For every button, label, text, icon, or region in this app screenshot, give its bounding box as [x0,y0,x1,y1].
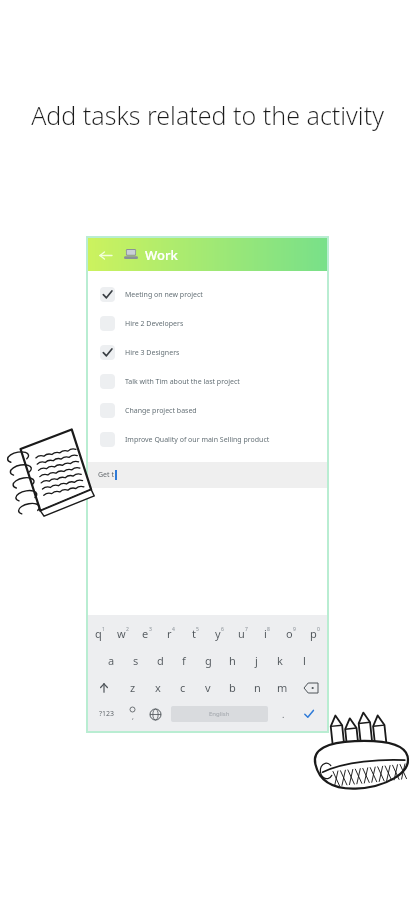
button[interactable]: p [303,620,327,647]
staticText: i [264,626,267,641]
staticText: 7 [245,626,248,633]
button[interactable]: v [195,674,220,701]
staticText: Talk with Tim about the last project [125,377,240,387]
staticText: Change project based [125,406,197,416]
button[interactable]: Shift [88,674,120,701]
staticText: k [277,653,283,668]
staticText: n [254,680,261,695]
staticText: t [192,626,196,641]
staticText: p [310,626,317,641]
staticText: 9 [293,626,296,633]
staticText: 8 [267,626,270,633]
staticText: g [205,653,212,668]
button[interactable]: Back [96,246,114,264]
button[interactable]: e [135,620,159,647]
button[interactable]: w [111,620,135,647]
button[interactable]: Enter [295,701,323,727]
button[interactable]: o [279,620,303,647]
staticText: u [238,626,245,641]
button[interactable]: d [148,647,172,674]
button[interactable]: t [183,620,207,647]
staticText: m [277,680,288,695]
staticText: o [286,626,293,641]
button[interactable]: Hire 2 Developers [88,309,327,338]
button[interactable]: s [124,647,148,674]
staticText: q [95,626,102,641]
button[interactable]: l [292,647,316,674]
button[interactable]: Improve Quality of our main Selling prod… [88,425,327,454]
button[interactable]: h [220,647,244,674]
staticText: z [130,680,136,695]
button[interactable]: Emoji and comma [121,701,144,727]
staticText: Get t [98,470,114,480]
staticText: x [155,680,161,695]
button[interactable]: y [207,620,231,647]
staticText: Meeting on new project [125,290,203,300]
staticText: . [282,708,285,720]
staticText: r [167,626,172,641]
button[interactable]: r [159,620,183,647]
staticText: j [255,653,258,668]
button[interactable]: b [220,674,245,701]
button[interactable]: . [272,701,295,727]
button[interactable]: q [88,620,111,647]
staticText: y [215,626,221,641]
staticText: 4 [172,626,175,633]
button[interactable]: n [245,674,270,701]
staticText: 6 [221,626,224,633]
staticText: a [108,653,115,668]
button[interactable]: Meeting on new project [88,280,327,309]
staticText: Improve Quality of our main Selling prod… [125,435,270,445]
button[interactable]: Back [88,238,327,271]
staticText: , [132,712,134,722]
staticText: ?123 [99,709,115,719]
staticText: 2 [126,626,129,633]
button[interactable]: m [270,674,295,701]
staticText: w [117,626,126,641]
staticText: Hire 3 Designers [125,348,180,358]
staticText: c [180,680,186,695]
staticText: v [205,680,211,695]
staticText: l [303,653,306,668]
staticText: 0 [317,626,320,633]
staticText: f [182,653,186,668]
button[interactable]: g [196,647,220,674]
button[interactable]: Change language [144,701,167,727]
staticText: 1 [102,626,105,633]
button[interactable]: English [171,706,268,722]
button[interactable]: j [244,647,268,674]
staticText: e [142,626,149,641]
button[interactable]: i [255,620,279,647]
button[interactable]: ?123 [92,701,121,727]
staticText: b [229,680,236,695]
button[interactable]: Get t [88,462,327,488]
staticText: 5 [196,626,199,633]
button[interactable]: f [172,647,196,674]
button[interactable]: Change project based [88,396,327,425]
staticText: s [133,653,139,668]
staticText: h [229,653,236,668]
staticText: English [209,710,230,718]
staticText: Hire 2 Developers [125,319,184,329]
staticText: d [157,653,164,668]
staticText: Work [145,246,178,264]
button[interactable]: a [99,647,124,674]
button[interactable]: Hire 3 Designers [88,338,327,367]
staticText: 3 [149,626,152,633]
button[interactable]: u [231,620,255,647]
button[interactable]: c [170,674,195,701]
button[interactable]: Backspace [295,674,327,701]
staticText: Add tasks related to the activity [31,98,384,132]
button[interactable]: Talk with Tim about the last project [88,367,327,396]
button[interactable]: k [268,647,292,674]
button[interactable]: x [145,674,170,701]
button[interactable]: z [120,674,145,701]
